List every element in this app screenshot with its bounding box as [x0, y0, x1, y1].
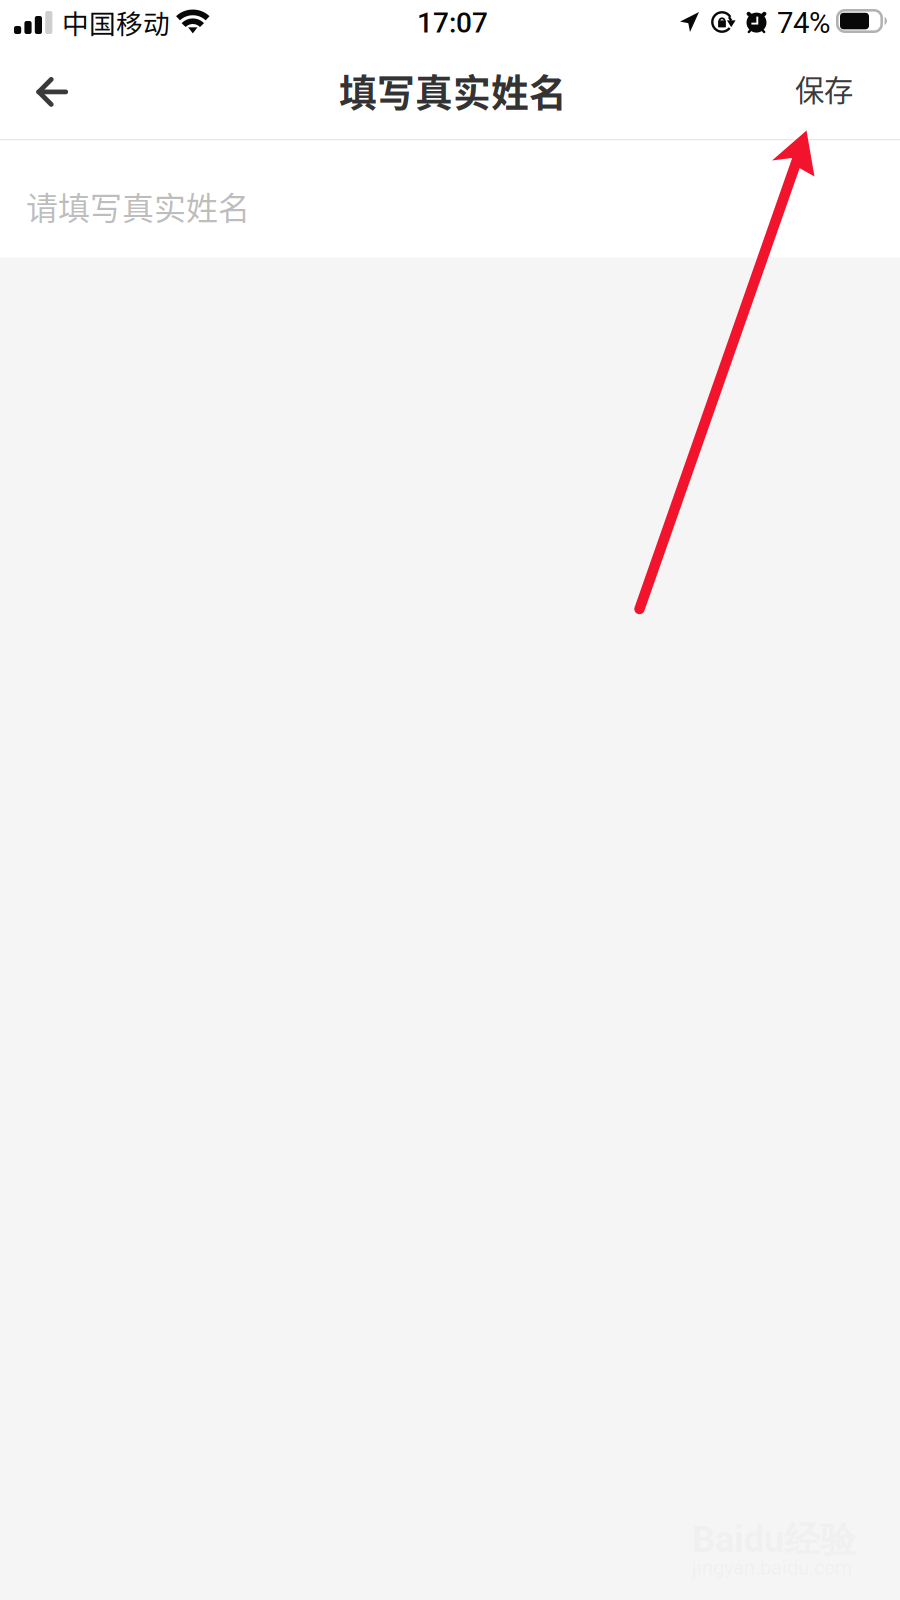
staticText: 中国移动 — [62, 3, 170, 41]
staticText: 请填写真实姓名 — [26, 183, 250, 229]
staticText: 填写真实姓名 — [339, 63, 567, 117]
staticText: 17:07 — [417, 7, 488, 39]
button[interactable]: Back — [0, 50, 88, 139]
button[interactable]: 保存 — [0, 50, 112, 139]
button[interactable]: 请填写真实姓名 — [0, 140, 900, 257]
staticText: 74% — [777, 6, 830, 40]
staticText: 保存 — [795, 67, 853, 110]
